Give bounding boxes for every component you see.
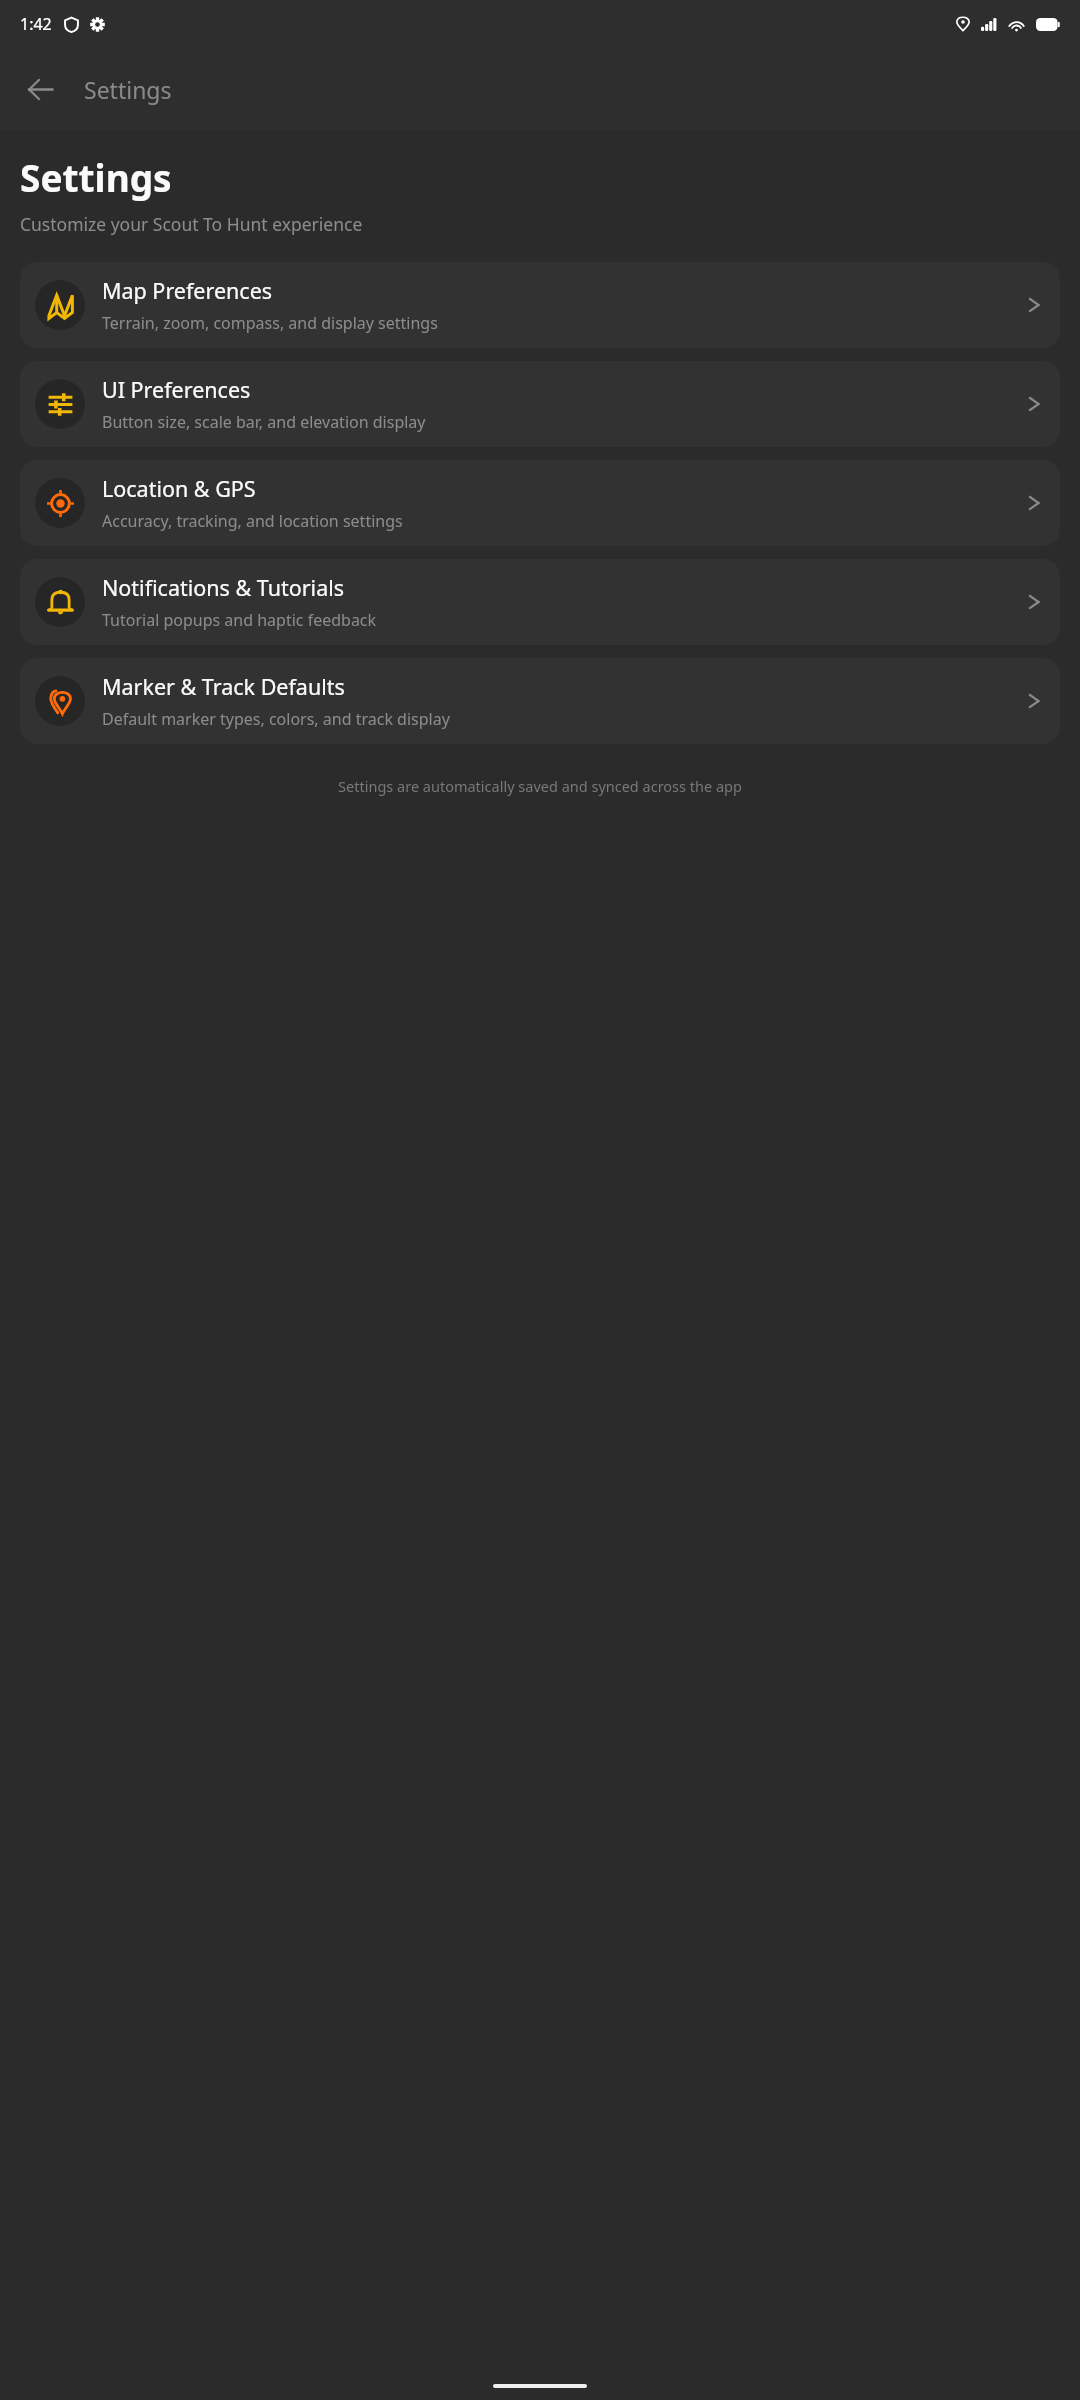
staticText: Settings xyxy=(84,74,172,105)
staticText: Settings xyxy=(20,152,172,202)
button[interactable]: Back xyxy=(8,57,72,121)
button[interactable]: UI Preferences xyxy=(20,361,1060,447)
button[interactable]: Notifications & Tutorials xyxy=(20,559,1060,645)
staticText: Map Preferences xyxy=(102,276,273,305)
staticText: Notifications & Tutorials xyxy=(102,573,345,602)
staticText: Terrain, zoom, compass, and display sett… xyxy=(102,312,901,334)
button[interactable]: Location & GPS xyxy=(20,460,1060,546)
staticText: Marker & Track Defaults xyxy=(102,672,345,701)
staticText: Accuracy, tracking, and location setting… xyxy=(102,510,901,532)
staticText: 1:42 xyxy=(20,13,52,35)
staticText: Default marker types, colors, and track … xyxy=(102,708,901,730)
staticText: UI Preferences xyxy=(102,375,251,404)
button[interactable]: Marker & Track Defaults xyxy=(20,658,1060,744)
staticText: Location & GPS xyxy=(102,474,256,503)
button[interactable]: Map Preferences xyxy=(20,262,1060,348)
staticText: Button size, scale bar, and elevation di… xyxy=(102,411,901,433)
staticText: Customize your Scout To Hunt experience xyxy=(20,212,363,236)
staticText: Settings are automatically saved and syn… xyxy=(18,776,1062,796)
staticText: Tutorial popups and haptic feedback xyxy=(102,609,1020,631)
